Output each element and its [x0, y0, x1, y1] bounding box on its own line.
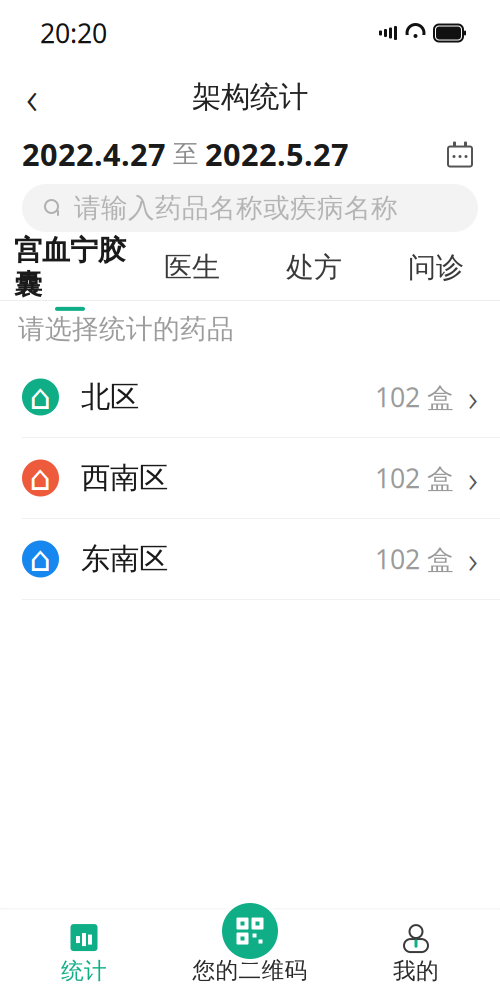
- staticText: ›: [468, 534, 478, 584]
- button[interactable]: 医生: [131, 244, 253, 300]
- button[interactable]: ⌂: [0, 519, 500, 600]
- button[interactable]: 问诊: [375, 244, 497, 300]
- staticText: 102 盒: [375, 541, 454, 577]
- staticText: 请选择统计的药品: [18, 313, 234, 345]
- staticText: 医生: [164, 250, 220, 285]
- staticText: 北区: [81, 379, 139, 415]
- staticText: 东南区: [81, 541, 168, 577]
- staticText: ⌂: [29, 377, 51, 417]
- staticText: 请输入药品名称或疾病名称: [74, 192, 398, 224]
- button[interactable]: 宫血宁胶囊: [9, 244, 131, 300]
- staticText: 架构统计: [192, 79, 308, 115]
- button[interactable]: Choose date range: [440, 134, 480, 174]
- staticText: ⌂: [29, 539, 51, 579]
- staticText: 20:20: [40, 15, 107, 51]
- staticText: 宫血宁胶囊: [14, 233, 126, 302]
- staticText: 102 盒: [375, 460, 454, 496]
- button[interactable]: ⌂: [0, 438, 500, 519]
- staticText: 2022.4.27: [22, 134, 166, 174]
- button[interactable]: 统计: [1, 909, 167, 999]
- staticText: 102 盒: [375, 379, 454, 415]
- button[interactable]: 您的二维码: [167, 909, 333, 999]
- staticText: ›: [468, 453, 478, 503]
- button[interactable]: Your QR code: [218, 899, 282, 963]
- button[interactable]: 处方: [253, 244, 375, 300]
- button[interactable]: 请输入药品名称或疾病名称: [22, 184, 478, 232]
- staticText: 至: [173, 138, 198, 169]
- staticText: 2022.5.27: [205, 134, 349, 174]
- staticText: 我的: [393, 957, 439, 985]
- staticText: 统计: [61, 957, 107, 985]
- staticText: 处方: [286, 250, 342, 285]
- staticText: ›: [468, 372, 478, 422]
- staticText: 问诊: [408, 250, 464, 285]
- button[interactable]: 2022.4.27: [22, 134, 349, 174]
- staticText: 西南区: [81, 460, 168, 496]
- button[interactable]: ⌂: [0, 357, 500, 438]
- staticText: ‹: [26, 67, 38, 127]
- button[interactable]: Back: [10, 75, 54, 119]
- staticText: 您的二维码: [192, 957, 307, 984]
- staticText: ⌂: [29, 458, 51, 498]
- button[interactable]: 我的: [333, 909, 499, 999]
